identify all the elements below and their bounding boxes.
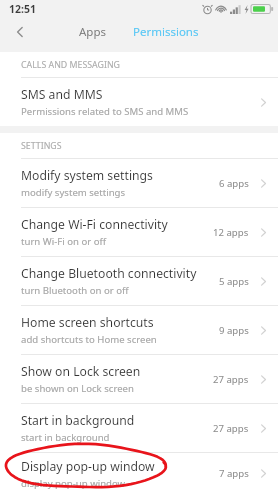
staticText: SMS and MMS <box>21 86 103 103</box>
staticText: 12:51 <box>9 2 36 16</box>
staticText: modify system settings <box>21 186 126 199</box>
staticText: Change Bluetooth connectivity <box>21 265 197 282</box>
staticText: Apps <box>79 24 107 40</box>
button[interactable]: Apps <box>71 20 115 44</box>
staticText: Show on Lock screen <box>21 363 141 380</box>
button[interactable]: Permissions <box>125 20 207 44</box>
staticText: CALLS AND MESSAGING <box>21 59 120 71</box>
button[interactable]: Display pop-up window <box>0 453 278 494</box>
button[interactable]: Back <box>0 18 40 45</box>
button[interactable]: Home screen shortcuts <box>0 306 278 355</box>
staticText: 6 apps <box>219 177 249 190</box>
staticText: SETTINGS <box>21 140 62 152</box>
staticText: Display pop-up window <box>21 458 155 475</box>
button[interactable]: Change Wi-Fi connectivity <box>0 208 278 257</box>
staticText: start in background <box>21 431 110 444</box>
staticText: turn Bluetooth on or off <box>21 284 129 297</box>
staticText: be shown on Lock screen <box>21 382 134 395</box>
staticText: 9 apps <box>219 324 249 337</box>
staticText: Start in background <box>21 412 135 429</box>
staticText: Modify system settings <box>21 167 153 184</box>
staticText: 27 apps <box>213 422 249 435</box>
button[interactable]: Show on Lock screen <box>0 355 278 404</box>
staticText: add shortcuts to Home screen <box>21 333 157 346</box>
button[interactable]: Start in background <box>0 404 278 453</box>
staticText: Permissions <box>133 24 199 40</box>
staticText: Permissions related to SMS and MMS <box>21 105 189 118</box>
staticText: display pop-up window <box>21 477 126 490</box>
button[interactable]: SMS and MMS <box>0 78 278 126</box>
staticText: Change Wi-Fi connectivity <box>21 216 168 233</box>
button[interactable]: Change Bluetooth connectivity <box>0 257 278 306</box>
staticText: 7 apps <box>219 467 249 480</box>
staticText: 12 apps <box>213 226 249 239</box>
staticText: Home screen shortcuts <box>21 314 154 331</box>
button[interactable]: Modify system settings <box>0 159 278 208</box>
staticText: 5 apps <box>219 275 249 288</box>
staticText: 27 apps <box>213 373 249 386</box>
staticText: turn Wi-Fi on or off <box>21 235 107 248</box>
